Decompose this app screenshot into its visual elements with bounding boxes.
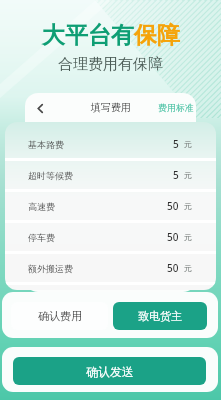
button[interactable]: 超时等候费	[5, 161, 216, 189]
staticText: 合理费用有保障	[58, 55, 163, 74]
staticText: 确认发送	[86, 364, 134, 379]
button[interactable]: 基本路费	[5, 130, 216, 158]
staticText: 基本路费	[28, 139, 64, 150]
staticText: 高速费	[28, 201, 55, 212]
button[interactable]: 确认发送	[13, 357, 206, 385]
staticText: 元	[184, 201, 192, 211]
staticText: 元	[184, 139, 192, 149]
staticText: 费用标准	[158, 102, 194, 113]
staticText: 超时等候费	[28, 170, 73, 181]
button[interactable]: 确认费用	[11, 302, 108, 330]
staticText: 大平台有	[42, 21, 134, 50]
staticText: 5	[173, 168, 179, 182]
staticText: 5	[173, 137, 179, 151]
button[interactable]: 高速费	[5, 192, 216, 220]
button[interactable]: 费用标准	[156, 99, 196, 116]
staticText: 确认费用	[38, 309, 82, 323]
staticText: 保障	[134, 21, 180, 50]
staticText: 额外搬运费	[28, 263, 73, 274]
staticText: 元	[184, 170, 192, 180]
staticText: 元	[184, 263, 192, 273]
button[interactable]: 停车费	[5, 223, 216, 251]
button[interactable]: 致电货主	[113, 302, 207, 330]
staticText: 停车费	[28, 232, 55, 243]
staticText: 致电货主	[138, 309, 182, 323]
staticText: 填写费用	[91, 101, 131, 114]
staticText: 50	[167, 199, 179, 213]
button[interactable]: 返回	[32, 100, 48, 116]
staticText: 50	[167, 261, 179, 275]
button[interactable]: 额外搬运费	[5, 254, 216, 282]
staticText: 50	[167, 230, 179, 244]
staticText: 元	[184, 232, 192, 242]
